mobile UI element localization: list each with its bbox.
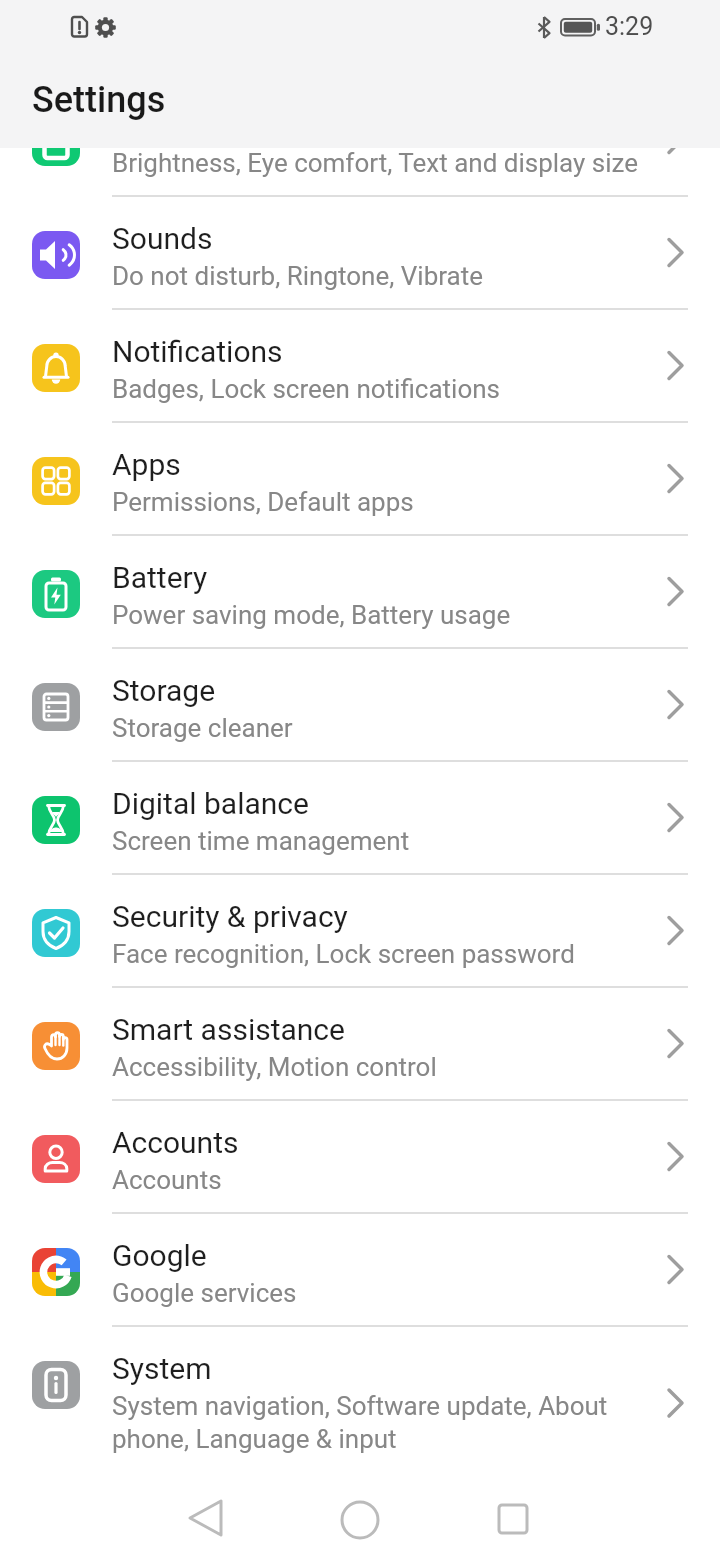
button[interactable] <box>146 1492 266 1544</box>
staticText: Accounts <box>112 1165 672 1195</box>
button[interactable]: Storage <box>0 648 720 761</box>
staticText: Badges, Lock screen notifications <box>112 374 672 404</box>
button[interactable]: Security & privacy <box>0 874 720 987</box>
staticText: System navigation, Software update, Abou… <box>112 1391 672 1454</box>
button[interactable]: System <box>0 1326 720 1470</box>
staticText: Security & privacy <box>112 899 348 934</box>
button[interactable]: Apps <box>0 422 720 535</box>
staticText: Google services <box>112 1278 672 1308</box>
button[interactable] <box>452 1492 572 1544</box>
staticText: 3:29 <box>605 12 654 41</box>
staticText: Power saving mode, Battery usage <box>112 600 672 630</box>
button[interactable]: Accounts <box>0 1100 720 1213</box>
button[interactable]: Digital balance <box>0 761 720 874</box>
button[interactable] <box>300 1492 420 1544</box>
staticText: Notifications <box>112 334 283 369</box>
button[interactable]: Sounds <box>0 196 720 309</box>
button[interactable]: Battery <box>0 535 720 648</box>
button[interactable]: Brightness, Eye comfort, Text and displa… <box>0 83 720 196</box>
button[interactable]: Smart assistance <box>0 987 720 1100</box>
staticText: Google <box>112 1238 207 1273</box>
staticText: Face recognition, Lock screen password <box>112 939 672 969</box>
staticText: Storage <box>112 673 216 708</box>
button[interactable]: Notifications <box>0 309 720 422</box>
staticText: Digital balance <box>112 786 309 821</box>
staticText: Accessibility, Motion control <box>112 1052 672 1082</box>
staticText: Storage cleaner <box>112 713 672 743</box>
staticText: Do not disturb, Ringtone, Vibrate <box>112 261 672 291</box>
staticText: Battery <box>112 560 208 595</box>
staticText: Sounds <box>112 221 213 256</box>
staticText: Settings <box>32 79 166 121</box>
staticText: Apps <box>112 447 181 482</box>
staticText: Brightness, Eye comfort, Text and displa… <box>112 148 672 178</box>
staticText: Permissions, Default apps <box>112 487 672 517</box>
button[interactable]: Google <box>0 1213 720 1326</box>
staticText: Screen time management <box>112 826 672 856</box>
staticText: Accounts <box>112 1125 239 1160</box>
staticText: System <box>112 1351 212 1386</box>
staticText: Smart assistance <box>112 1012 345 1047</box>
